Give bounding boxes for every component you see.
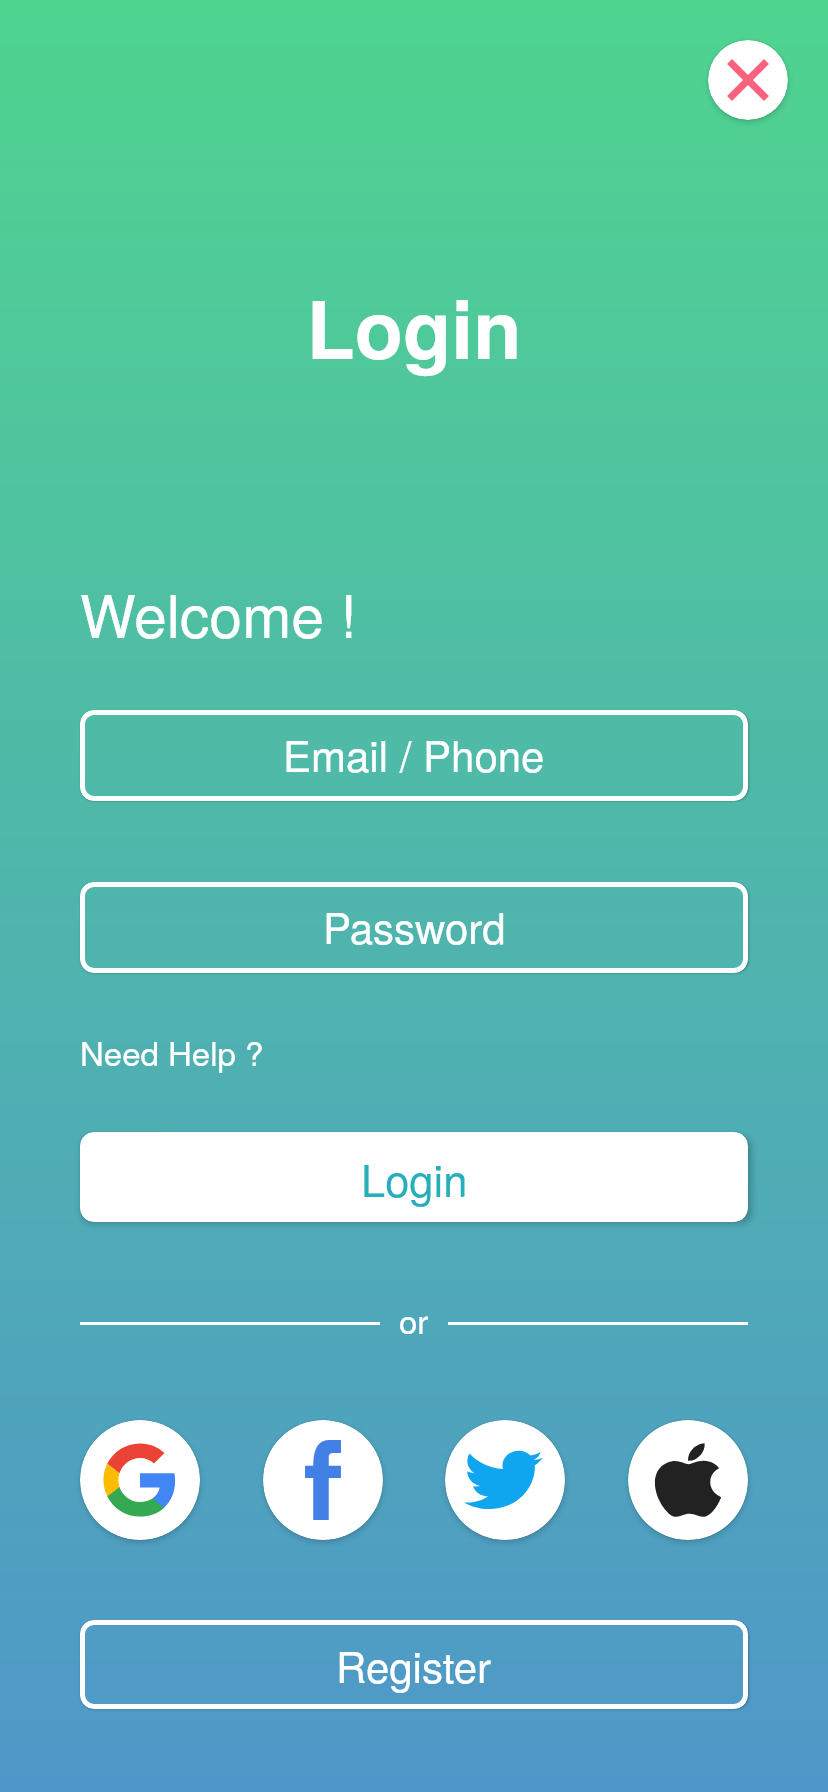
- staticText: Email / Phone: [283, 724, 545, 784]
- button[interactable]: Email / Phone: [80, 710, 748, 801]
- staticText: or: [399, 1296, 429, 1343]
- staticText: Welcome !: [80, 570, 357, 654]
- button[interactable]: Sign in with Apple: [628, 1420, 748, 1540]
- button[interactable]: Sign in with Twitter: [445, 1420, 565, 1540]
- staticText: Register: [336, 1635, 492, 1695]
- staticText: Login: [361, 1147, 468, 1209]
- button[interactable]: Sign in with Google: [80, 1420, 200, 1540]
- button[interactable]: Password: [80, 882, 748, 973]
- button[interactable]: Sign in with Facebook: [263, 1420, 383, 1540]
- button[interactable]: Need Help ?: [80, 1021, 290, 1079]
- staticText: Password: [323, 896, 506, 956]
- staticText: Login: [306, 270, 522, 383]
- button[interactable]: Register: [80, 1620, 748, 1709]
- staticText: Need Help ?: [80, 1028, 264, 1075]
- button[interactable]: Login: [80, 1132, 748, 1222]
- button[interactable]: Close: [708, 40, 788, 120]
